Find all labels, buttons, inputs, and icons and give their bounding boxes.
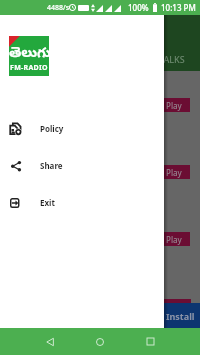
staticText: 100% — [128, 2, 149, 13]
button[interactable]: Recents — [133, 328, 167, 355]
staticText: Play — [166, 100, 182, 111]
staticText: 4488/s — [47, 3, 70, 13]
button[interactable]: Back — [33, 328, 67, 355]
staticText: Policy — [40, 123, 64, 134]
button[interactable]: Exit — [0, 184, 164, 221]
button[interactable]: Back — [33, 328, 67, 355]
staticText: తెలుగు — [9, 45, 49, 64]
staticText: Play — [166, 167, 182, 178]
staticText: Exit — [40, 197, 55, 208]
staticText: 10:13 PM — [161, 2, 196, 13]
staticText: Play — [166, 234, 182, 245]
staticText: Share — [40, 160, 63, 171]
button[interactable]: Recents — [133, 328, 167, 355]
button[interactable]: Share — [0, 147, 164, 184]
button[interactable]: Home — [83, 328, 117, 355]
button[interactable]: Policy — [0, 110, 164, 147]
staticText: FM-RADIO — [10, 63, 48, 73]
staticText: TELUGU TALKS — [122, 53, 185, 65]
staticText: Install — [166, 310, 195, 322]
button[interactable]: Home — [83, 328, 117, 355]
